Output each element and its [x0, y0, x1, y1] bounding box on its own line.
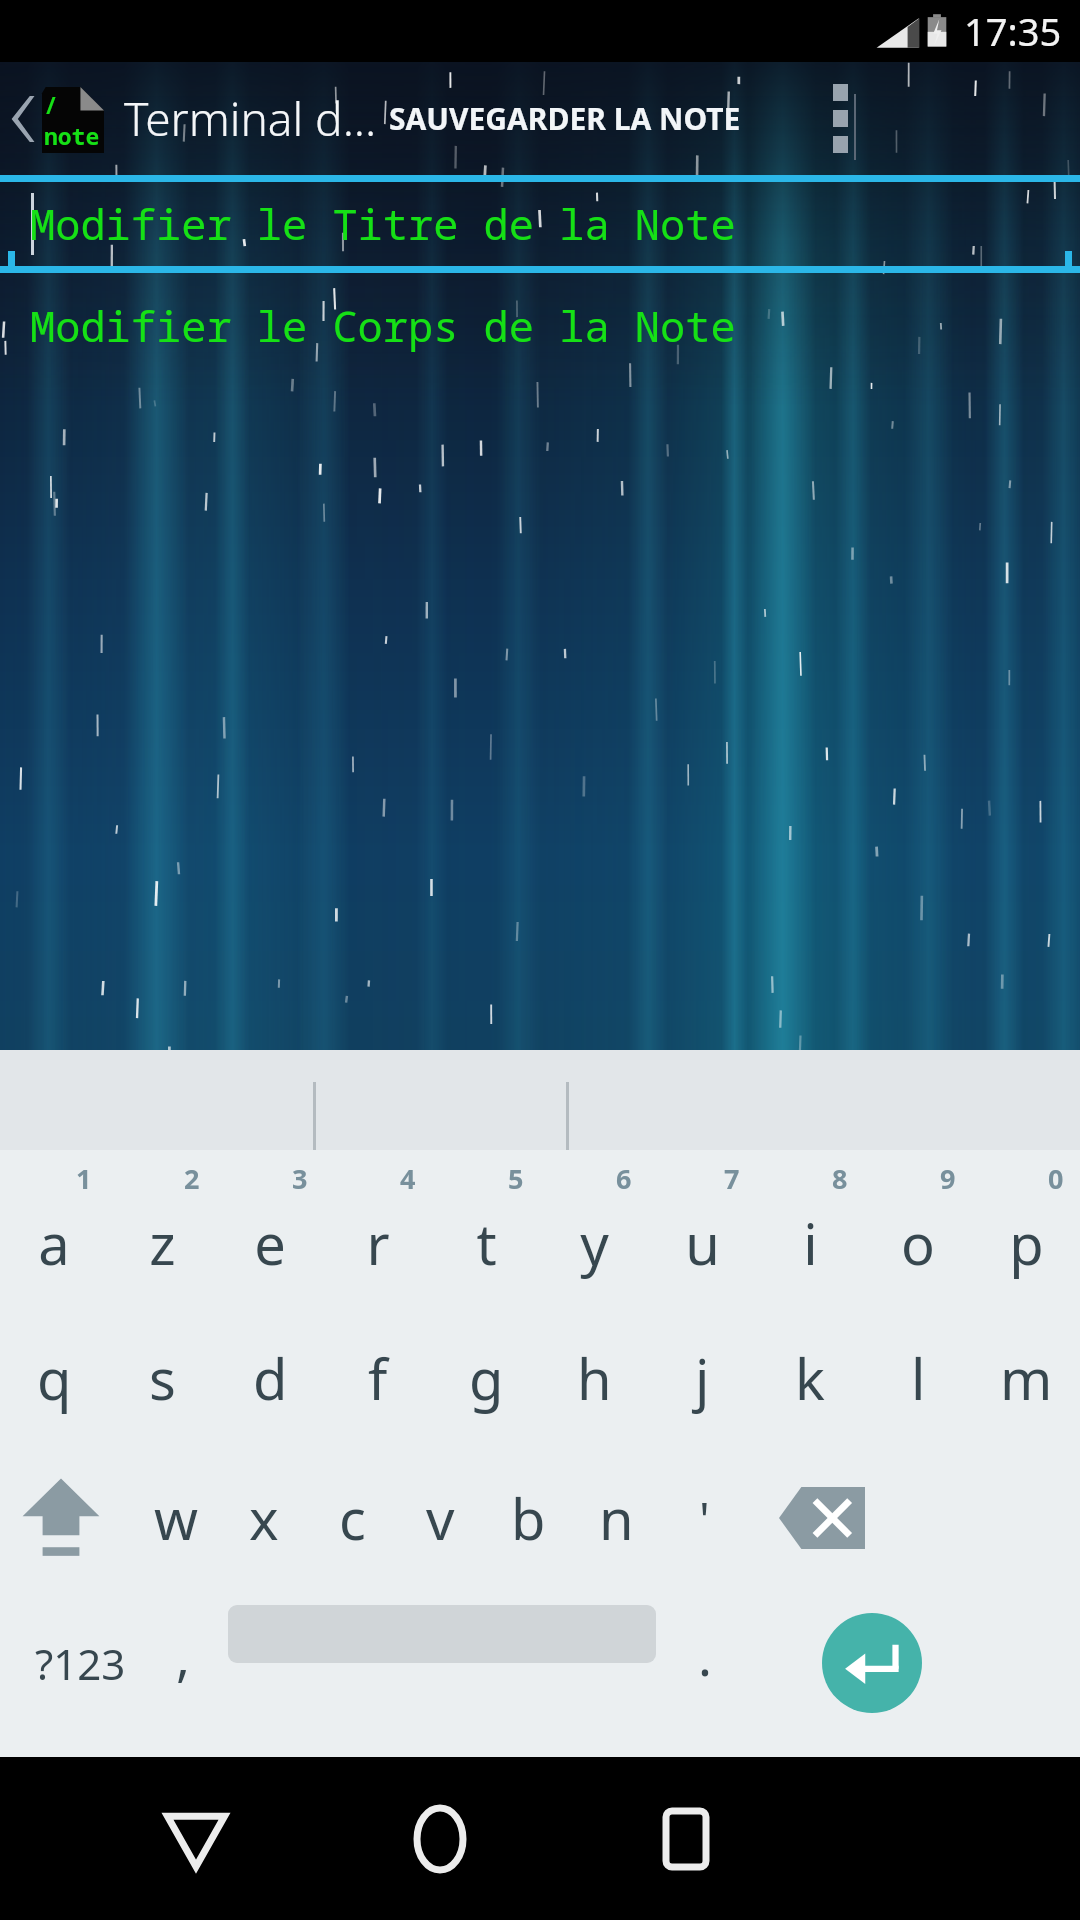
button[interactable]: More options: [795, 62, 885, 175]
button[interactable]: a: [0, 1150, 108, 1308]
staticText: d: [253, 1340, 288, 1416]
button[interactable]: f: [324, 1308, 432, 1448]
button[interactable]: j: [648, 1308, 756, 1448]
staticText: q: [37, 1340, 72, 1416]
button[interactable]: Recent apps: [610, 1757, 762, 1920]
button[interactable]: u: [648, 1150, 756, 1308]
staticText: y: [580, 1205, 609, 1281]
button[interactable]: b: [484, 1448, 572, 1588]
staticText: f: [368, 1340, 388, 1416]
staticText: t: [476, 1205, 497, 1281]
button[interactable]: k: [756, 1308, 864, 1448]
button[interactable]: n: [572, 1448, 660, 1588]
button[interactable]: o: [864, 1150, 972, 1308]
button[interactable]: m: [972, 1308, 1080, 1448]
staticText: ,: [176, 1620, 190, 1691]
staticText: 4: [400, 1160, 416, 1197]
button[interactable]: Shift: [0, 1448, 122, 1588]
staticText: k: [795, 1340, 825, 1416]
staticText: b: [511, 1480, 546, 1556]
button[interactable]: .: [660, 1588, 750, 1738]
button[interactable]: x: [220, 1448, 308, 1588]
staticText: 9: [940, 1160, 956, 1197]
staticText: n: [599, 1480, 634, 1556]
staticText: 5: [508, 1160, 524, 1197]
staticText: h: [577, 1340, 612, 1416]
staticText: i: [803, 1205, 818, 1281]
button[interactable]: Back: [120, 1757, 272, 1920]
button[interactable]: SAUVEGARDER LA NOTE: [380, 62, 750, 175]
button[interactable]: z: [108, 1150, 216, 1308]
button[interactable]: l: [864, 1308, 972, 1448]
button[interactable]: h: [540, 1308, 648, 1448]
staticText: e: [254, 1205, 286, 1281]
staticText: 2: [184, 1160, 200, 1197]
button[interactable]: w: [132, 1448, 220, 1588]
staticText: s: [149, 1340, 176, 1416]
staticText: ': [699, 1486, 710, 1551]
staticText: v: [426, 1480, 455, 1556]
button[interactable]: Enter: [774, 1588, 970, 1738]
button[interactable]: q: [0, 1308, 108, 1448]
button[interactable]: p: [972, 1150, 1080, 1308]
button[interactable]: v: [396, 1448, 484, 1588]
staticText: 3: [292, 1160, 308, 1197]
button[interactable]: g: [432, 1308, 540, 1448]
staticText: r: [366, 1205, 390, 1281]
button[interactable]: t: [432, 1150, 540, 1308]
button[interactable]: Back: [0, 62, 44, 175]
button[interactable]: ': [660, 1448, 748, 1588]
button[interactable]: e: [216, 1150, 324, 1308]
button[interactable]: ?123: [0, 1588, 160, 1738]
button[interactable]: i: [756, 1150, 864, 1308]
button[interactable]: ,: [140, 1588, 226, 1738]
button[interactable]: Modifier le Corps de la Note: [0, 273, 1080, 393]
button[interactable]: Modifier le Titre de la Note: [0, 175, 1080, 273]
staticText: w: [154, 1480, 199, 1556]
staticText: 8: [832, 1160, 848, 1197]
staticText: 1: [76, 1160, 92, 1197]
staticText: 17:35: [964, 5, 1062, 57]
staticText: o: [901, 1205, 935, 1281]
staticText: x: [249, 1480, 279, 1556]
staticText: 7: [724, 1160, 740, 1197]
button[interactable]: Home: [364, 1757, 516, 1920]
staticText: j: [695, 1340, 710, 1416]
staticText: Terminal d...: [124, 87, 377, 150]
button[interactable]: d: [216, 1308, 324, 1448]
button[interactable]: y: [540, 1150, 648, 1308]
staticText: 0: [1048, 1160, 1064, 1197]
staticText: p: [1009, 1205, 1044, 1281]
staticText: /note: [44, 89, 106, 151]
staticText: ?123: [35, 1635, 126, 1692]
staticText: Modifier le Titre de la Note: [30, 195, 736, 252]
staticText: l: [911, 1340, 926, 1416]
button[interactable]: c: [308, 1448, 396, 1588]
staticText: 6: [616, 1160, 632, 1197]
staticText: u: [685, 1205, 720, 1281]
button[interactable]: Backspace: [758, 1448, 886, 1588]
staticText: m: [1000, 1340, 1053, 1416]
button[interactable]: s: [108, 1308, 216, 1448]
staticText: a: [38, 1205, 70, 1281]
staticText: .: [698, 1620, 712, 1691]
staticText: z: [149, 1205, 176, 1281]
staticText: Modifier le Corps de la Note: [30, 297, 736, 354]
staticText: g: [469, 1340, 504, 1416]
button[interactable]: r: [324, 1150, 432, 1308]
staticText: c: [339, 1480, 366, 1556]
staticText: SAUVEGARDER LA NOTE: [389, 98, 741, 139]
